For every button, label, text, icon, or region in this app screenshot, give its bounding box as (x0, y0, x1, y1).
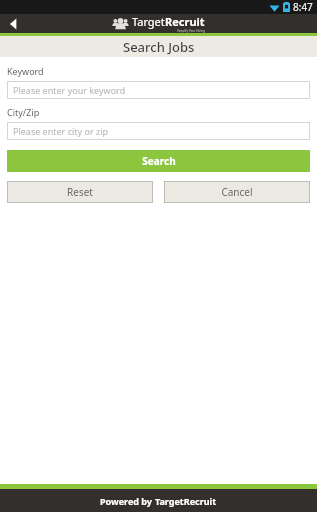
button[interactable]: Back (0, 14, 26, 33)
button[interactable]: Cancel (164, 181, 310, 203)
staticText: Search (142, 154, 176, 168)
staticText: City/Zip (7, 106, 40, 118)
button[interactable]: Search (7, 150, 310, 172)
staticText: Search Jobs (123, 38, 195, 56)
staticText: Please enter city or zip (13, 125, 109, 137)
staticText: Simplify Your Hiring (177, 29, 205, 33)
staticText: Reset (67, 185, 93, 199)
staticText: Keyword (7, 65, 44, 77)
staticText: Powered by (100, 495, 155, 507)
button[interactable]: Reset (7, 181, 153, 203)
button[interactable]: Please enter city or zip (7, 122, 310, 140)
button[interactable]: Please enter your keyword (7, 81, 310, 99)
staticText: TargetRecruit (155, 495, 217, 507)
staticText: Cancel (221, 185, 253, 199)
staticText: 8:47 (293, 0, 313, 14)
staticText: Please enter your keyword (13, 84, 126, 96)
staticText: Recruit (165, 14, 205, 29)
staticText: Target (132, 14, 165, 29)
